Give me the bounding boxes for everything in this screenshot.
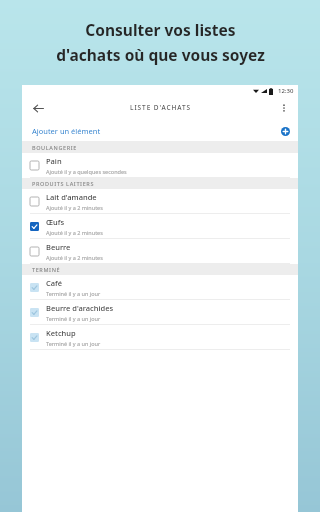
staticText: Beurre d'arachides [46, 303, 114, 313]
staticText: Ajouté il y a quelques secondes [46, 168, 127, 175]
staticText: Œufs [46, 217, 65, 227]
button[interactable]: Décocher Beurre d'arachides [22, 300, 298, 325]
button[interactable]: Décocher Beurre d'arachides [30, 308, 39, 317]
button[interactable]: Cocher Lait d'amande [22, 189, 298, 214]
button[interactable]: Retour [27, 97, 49, 119]
staticText: Pain [46, 156, 62, 166]
staticText: Ajouter un élément [32, 126, 101, 136]
staticText: Café [46, 278, 63, 288]
button[interactable]: Cocher Beurre [30, 247, 39, 256]
staticText: Ajouté il y a 2 minutes [46, 254, 103, 261]
staticText: TERMINÉ [32, 266, 61, 273]
staticText: Consulter vos listes [85, 19, 236, 40]
button[interactable]: Décocher Ketchup [22, 325, 298, 350]
button[interactable]: Décocher Café [22, 275, 298, 300]
button[interactable]: Décocher Ketchup [30, 333, 39, 342]
staticText: LISTE D'ACHATS [130, 103, 191, 112]
button[interactable]: Cocher Lait d'amande [30, 197, 39, 206]
staticText: Ketchup [46, 328, 76, 338]
staticText: Terminé il y a un jour [46, 290, 101, 297]
staticText: Ajouté il y a 2 minutes [46, 204, 103, 211]
staticText: BOULANGERIE [32, 144, 77, 151]
staticText: Lait d'amande [46, 192, 97, 202]
button[interactable]: Décocher Œufs [30, 222, 39, 231]
button[interactable]: Cocher Pain [30, 161, 39, 170]
button[interactable]: Décocher Œufs [22, 214, 298, 239]
staticText: Ajouté il y a 2 minutes [46, 229, 103, 236]
button[interactable]: Plus d'options [274, 98, 294, 118]
staticText: d'achats où que vous soyez [56, 44, 265, 65]
button[interactable]: Cocher Pain [22, 153, 298, 178]
staticText: Terminé il y a un jour [46, 340, 101, 347]
staticText: PRODUITS LAITIERS [32, 180, 95, 187]
staticText: Terminé il y a un jour [46, 315, 101, 322]
button[interactable]: Cocher Beurre [22, 239, 298, 264]
button[interactable]: Ajouter un élément [22, 119, 298, 142]
button[interactable]: Décocher Café [30, 283, 39, 292]
staticText: 12:30 [278, 87, 294, 95]
staticText: Beurre [46, 242, 71, 252]
